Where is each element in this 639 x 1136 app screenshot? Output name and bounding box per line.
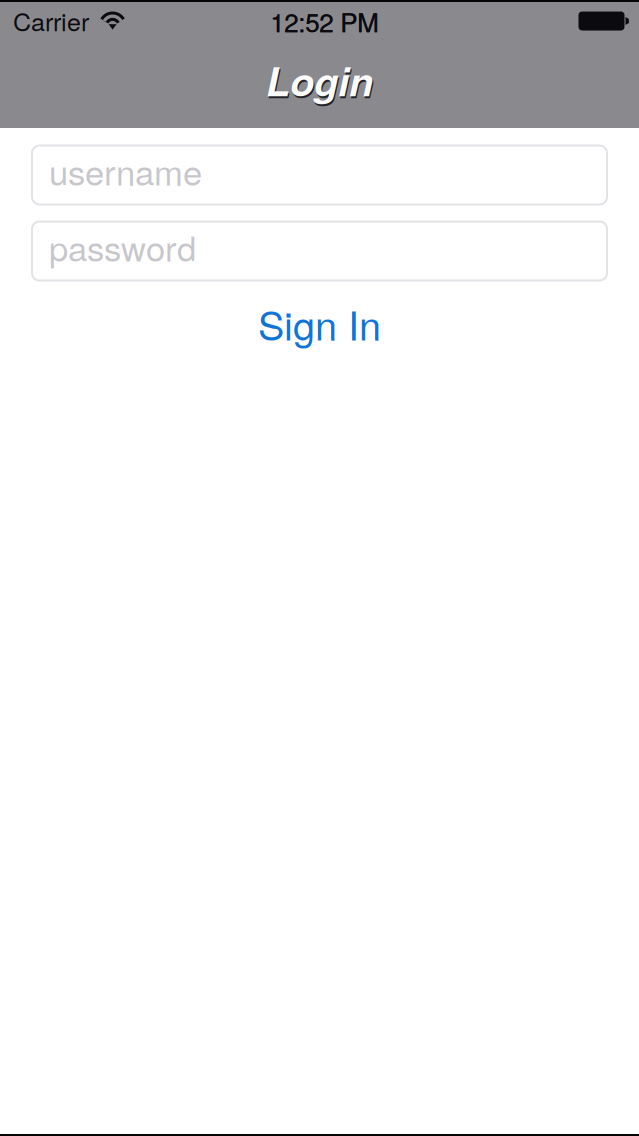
staticText: 12:52 PM	[270, 2, 379, 39]
button[interactable]: Sign In	[209, 298, 429, 348]
staticText: 12:52 PM	[270, 2, 379, 39]
button[interactable]: password	[32, 221, 607, 280]
staticText: Login	[266, 52, 373, 108]
button[interactable]: username	[32, 145, 607, 204]
staticText: password	[49, 222, 196, 271]
staticText: username	[49, 146, 202, 195]
staticText: Login	[267, 54, 374, 110]
staticText: Sign In	[258, 295, 381, 352]
staticText: Carrier	[13, 3, 89, 38]
